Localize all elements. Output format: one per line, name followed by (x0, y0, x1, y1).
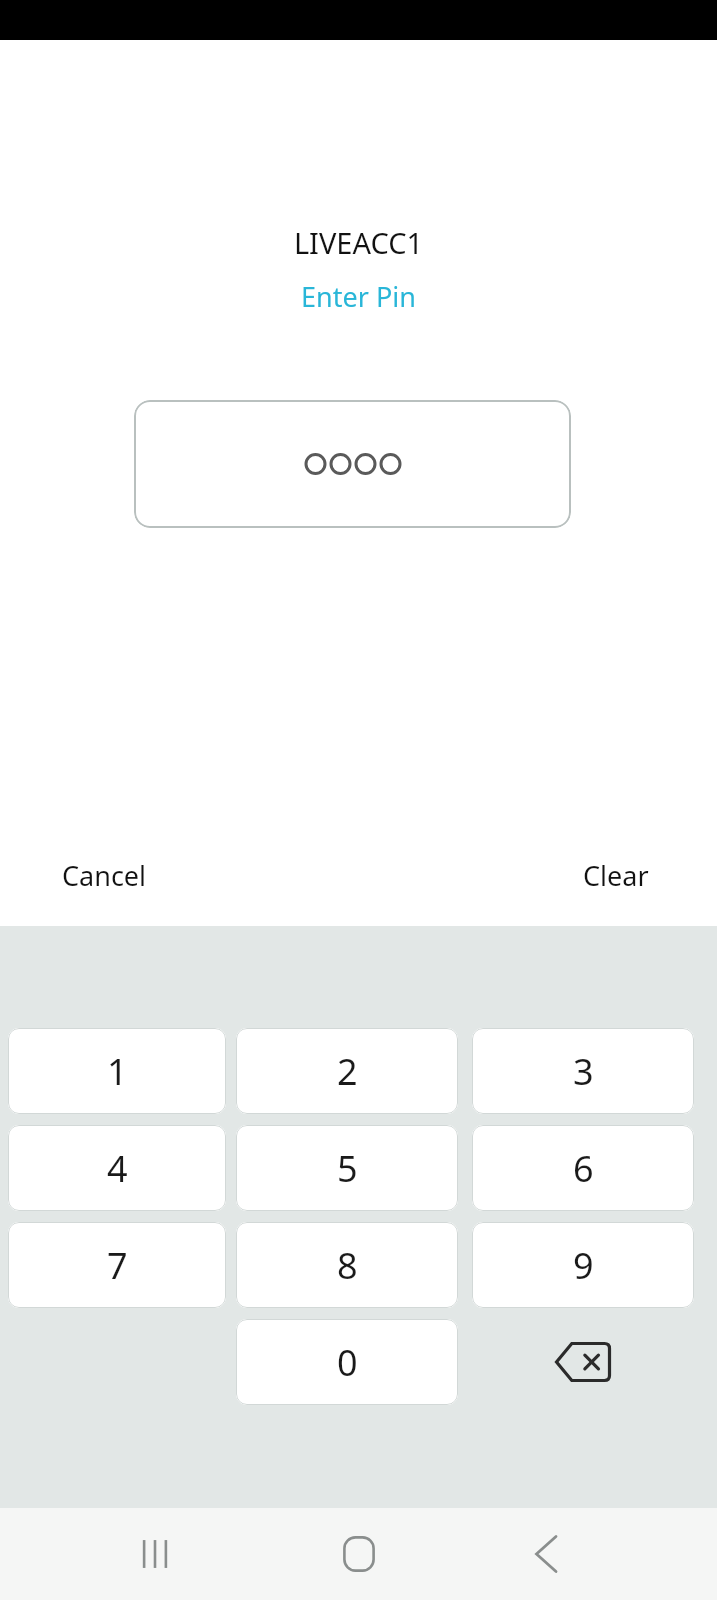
button[interactable]: 9 (472, 1222, 694, 1308)
staticText: Clear (583, 857, 649, 894)
button[interactable]: Backspace (472, 1319, 694, 1405)
staticText: Enter Pin (0, 278, 717, 315)
staticText: 0 (337, 1338, 358, 1387)
staticText: Cancel (62, 857, 147, 894)
staticText: LIVEACC1 (0, 223, 717, 262)
button[interactable]: Clear (561, 845, 671, 906)
button[interactable]: 3 (472, 1028, 694, 1114)
button[interactable]: 4 (8, 1125, 226, 1211)
staticText: 8 (337, 1241, 358, 1290)
button[interactable] (134, 400, 571, 528)
button[interactable]: Cancel (40, 845, 169, 906)
button[interactable]: Home (323, 1518, 395, 1590)
staticText: 6 (573, 1144, 594, 1193)
button[interactable]: 2 (236, 1028, 458, 1114)
staticText: 7 (107, 1241, 128, 1290)
button[interactable]: Recent apps (119, 1518, 191, 1590)
button[interactable]: Back (510, 1518, 582, 1590)
button[interactable]: 0 (236, 1319, 458, 1405)
button[interactable]: 5 (236, 1125, 458, 1211)
button[interactable]: 8 (236, 1222, 458, 1308)
staticText: 2 (337, 1047, 358, 1096)
button[interactable]: 7 (8, 1222, 226, 1308)
staticText: 5 (337, 1144, 358, 1193)
staticText: 4 (107, 1144, 128, 1193)
staticText: 9 (573, 1241, 594, 1290)
staticText: 1 (107, 1047, 128, 1096)
button[interactable]: 6 (472, 1125, 694, 1211)
staticText: 3 (573, 1047, 594, 1096)
button[interactable]: 1 (8, 1028, 226, 1114)
